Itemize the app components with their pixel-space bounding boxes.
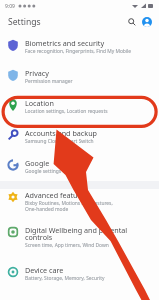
staticText: Device care [25, 265, 64, 275]
button[interactable]: Location [0, 92, 159, 122]
staticText: Accounts and backup [25, 128, 97, 138]
staticText: Battery, Storage, Memory, Security [25, 275, 105, 282]
staticText: Biometrics and security [25, 38, 105, 48]
staticText: Permission manager [25, 78, 73, 85]
staticText: Advanced features [25, 190, 88, 200]
staticText: Location settings, Location requests [25, 108, 108, 115]
button[interactable]: Search [125, 15, 139, 29]
button[interactable]: Device care [0, 262, 159, 296]
button[interactable]: Digital Wellbeing and parental controls [0, 222, 159, 262]
button[interactable]: Google [0, 152, 159, 181]
button[interactable]: Biometrics and security [0, 32, 159, 62]
staticText: Privacy [25, 68, 49, 78]
button[interactable]: Privacy [0, 62, 159, 92]
staticText: Samsung Cloud, Smart Switch [25, 138, 94, 145]
staticText: Face recognition, Fingerprints, Find My … [25, 48, 132, 55]
staticText: 9:09 [5, 3, 15, 10]
button[interactable]: Advanced features [0, 189, 159, 222]
staticText: Bixby Routines, Motions and gestures, On… [25, 200, 113, 212]
staticText: Settings [8, 16, 41, 28]
staticText: Screen time, App timers, Wind Down [25, 242, 109, 249]
staticText: Location [25, 98, 54, 108]
button[interactable]: Account [142, 17, 152, 27]
staticText: Google [25, 158, 50, 168]
staticText: Digital Wellbeing and parental controls [25, 225, 128, 242]
staticText: Google settings [25, 168, 62, 175]
button[interactable]: Accounts and backup [0, 122, 159, 152]
